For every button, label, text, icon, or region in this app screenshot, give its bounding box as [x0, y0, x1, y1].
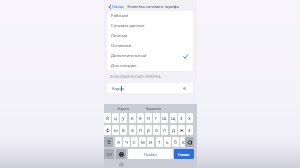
button[interactable]: Для поездок	[107, 61, 193, 71]
button[interactable]: Личный	[107, 31, 193, 41]
button[interactable]: ч	[123, 137, 130, 147]
staticText: 123	[106, 152, 112, 157]
staticText: о	[155, 127, 158, 134]
staticText: у	[122, 115, 125, 122]
button[interactable]: Рабочий	[107, 11, 193, 21]
staticText: Назад	[112, 4, 124, 9]
staticText: Дополнительный	[111, 53, 147, 59]
staticText: н	[147, 115, 151, 122]
staticText: ф	[106, 127, 110, 134]
button[interactable]: с	[131, 137, 138, 147]
staticText: ц	[114, 115, 117, 122]
button[interactable]: Карол	[107, 83, 193, 93]
staticText: Этикетка сотового тарифа	[127, 4, 179, 9]
button[interactable]: м	[139, 137, 146, 147]
button[interactable]: Готово	[174, 149, 194, 159]
button[interactable]: Сотовые данные	[107, 21, 193, 31]
staticText: к	[131, 115, 134, 122]
button[interactable]: «Карол»	[116, 104, 142, 113]
button[interactable]: в	[120, 125, 127, 135]
button[interactable]: ь	[164, 137, 171, 147]
button[interactable]: Shift	[104, 137, 113, 147]
staticText: я	[117, 139, 120, 146]
button[interactable]: Основной	[107, 41, 193, 51]
button[interactable]: Пробел	[128, 149, 173, 159]
button[interactable]: Каролина	[145, 104, 175, 113]
staticText: е	[139, 115, 142, 122]
staticText: б	[174, 139, 177, 146]
button[interactable]: э	[186, 125, 193, 135]
button[interactable]: и	[147, 137, 154, 147]
button[interactable]: т	[156, 137, 163, 147]
staticText: Карол	[112, 86, 125, 92]
button[interactable]: н	[145, 113, 152, 123]
button[interactable]: х	[186, 113, 193, 123]
button[interactable]: л	[161, 125, 168, 135]
button[interactable]: щ	[170, 113, 177, 123]
staticText: ь	[166, 139, 169, 146]
staticText: щ	[171, 115, 176, 122]
staticText: э	[188, 127, 191, 134]
button[interactable]: у	[120, 113, 127, 123]
button[interactable]: Change keyboard	[116, 149, 126, 159]
button[interactable]: я	[115, 137, 122, 147]
staticText: в	[122, 127, 125, 134]
button[interactable]: д	[170, 125, 177, 135]
button[interactable]: ю	[180, 137, 187, 147]
button[interactable]: ц	[112, 113, 119, 123]
staticText: з	[180, 115, 183, 122]
staticText: ПОЛЬЗОВАТЕЛЬСКАЯ ЭТИКЕТКА	[110, 75, 161, 79]
button[interactable]: 123	[104, 149, 114, 159]
staticText: Рабочий	[111, 13, 129, 19]
button[interactable]: о	[153, 125, 160, 135]
staticText: г	[155, 115, 158, 122]
staticText: м	[141, 139, 145, 146]
staticText: с	[133, 139, 136, 146]
button[interactable]: е	[137, 113, 144, 123]
staticText: й	[106, 115, 110, 122]
staticText: Каролина	[146, 107, 162, 111]
staticText: Пробел	[144, 152, 157, 157]
staticText: п	[139, 127, 142, 134]
button[interactable]: б	[172, 137, 179, 147]
staticText: Сотовые данные	[111, 23, 145, 29]
staticText: Личный	[111, 33, 128, 39]
staticText: а	[131, 127, 134, 134]
staticText: Готово	[178, 152, 190, 157]
button[interactable]: Back	[106, 2, 126, 11]
staticText: л	[163, 127, 166, 134]
staticText: ж	[180, 127, 184, 134]
staticText: х	[188, 115, 191, 122]
button[interactable]: ф	[104, 125, 111, 135]
button[interactable]: ы	[112, 125, 119, 135]
staticText: «Карол»	[117, 107, 130, 111]
button[interactable]: з	[178, 113, 185, 123]
staticText: Основной	[111, 43, 132, 49]
button[interactable]: к	[129, 113, 136, 123]
button[interactable]: г	[153, 113, 160, 123]
staticText: р	[147, 127, 150, 134]
staticText: д	[172, 127, 175, 134]
button[interactable]: п	[137, 125, 144, 135]
staticText: ш	[162, 115, 167, 122]
staticText: ч	[125, 139, 128, 146]
button[interactable]: Delete	[185, 137, 194, 147]
button[interactable]: Clear text	[183, 87, 186, 90]
staticText: ю	[182, 139, 186, 146]
button[interactable]: ж	[178, 125, 185, 135]
button[interactable]: а	[129, 125, 136, 135]
staticText: Для поездок	[111, 63, 137, 69]
staticText: и	[149, 139, 153, 146]
button[interactable]: Дополнительный	[107, 51, 193, 61]
button[interactable]: ш	[161, 113, 168, 123]
button[interactable]: й	[104, 113, 111, 123]
staticText: ы	[114, 127, 118, 134]
button[interactable]: р	[145, 125, 152, 135]
staticText: т	[158, 139, 161, 146]
